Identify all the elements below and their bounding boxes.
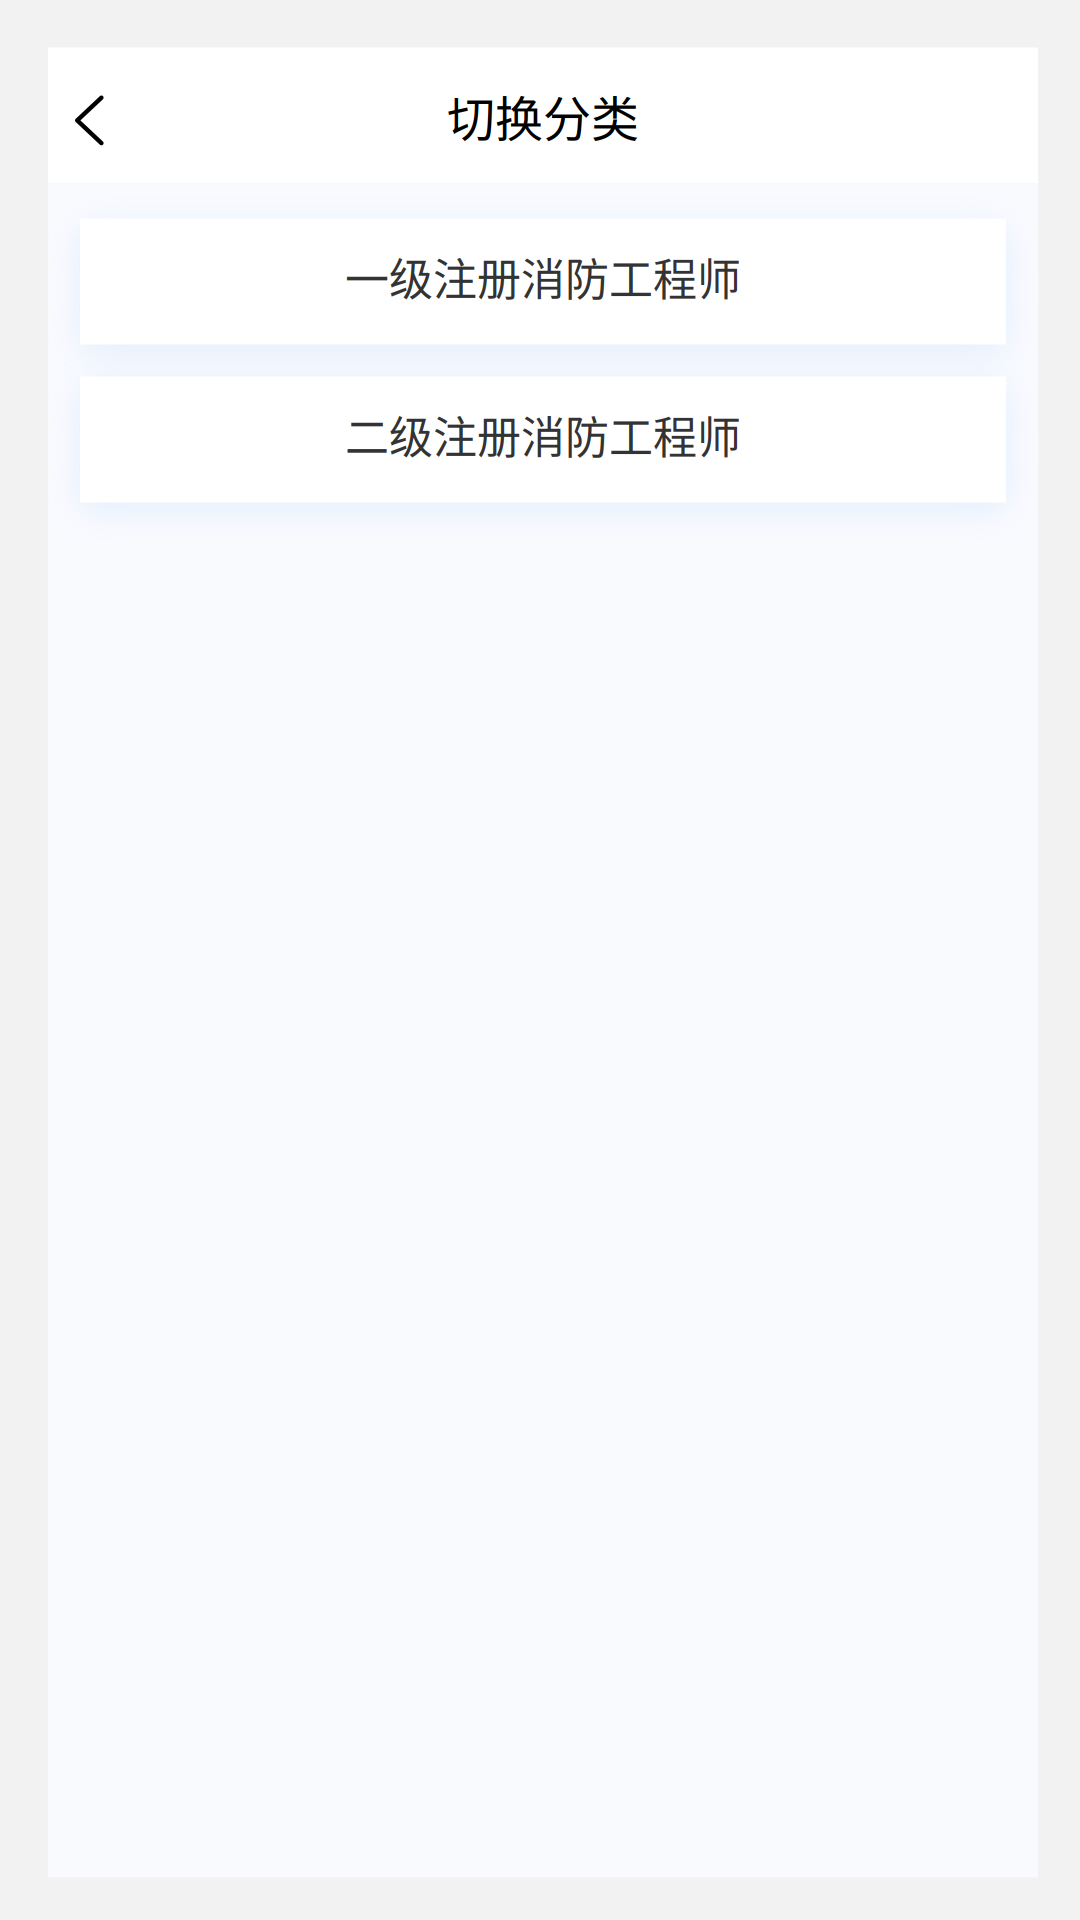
staticText: 切换分类	[447, 81, 639, 150]
button[interactable]: Back	[48, 47, 158, 183]
button[interactable]: 二级注册消防工程师	[80, 376, 1006, 502]
button[interactable]: 一级注册消防工程师	[80, 218, 1006, 344]
staticText: 二级注册消防工程师	[345, 403, 741, 466]
staticText: 一级注册消防工程师	[345, 245, 741, 308]
